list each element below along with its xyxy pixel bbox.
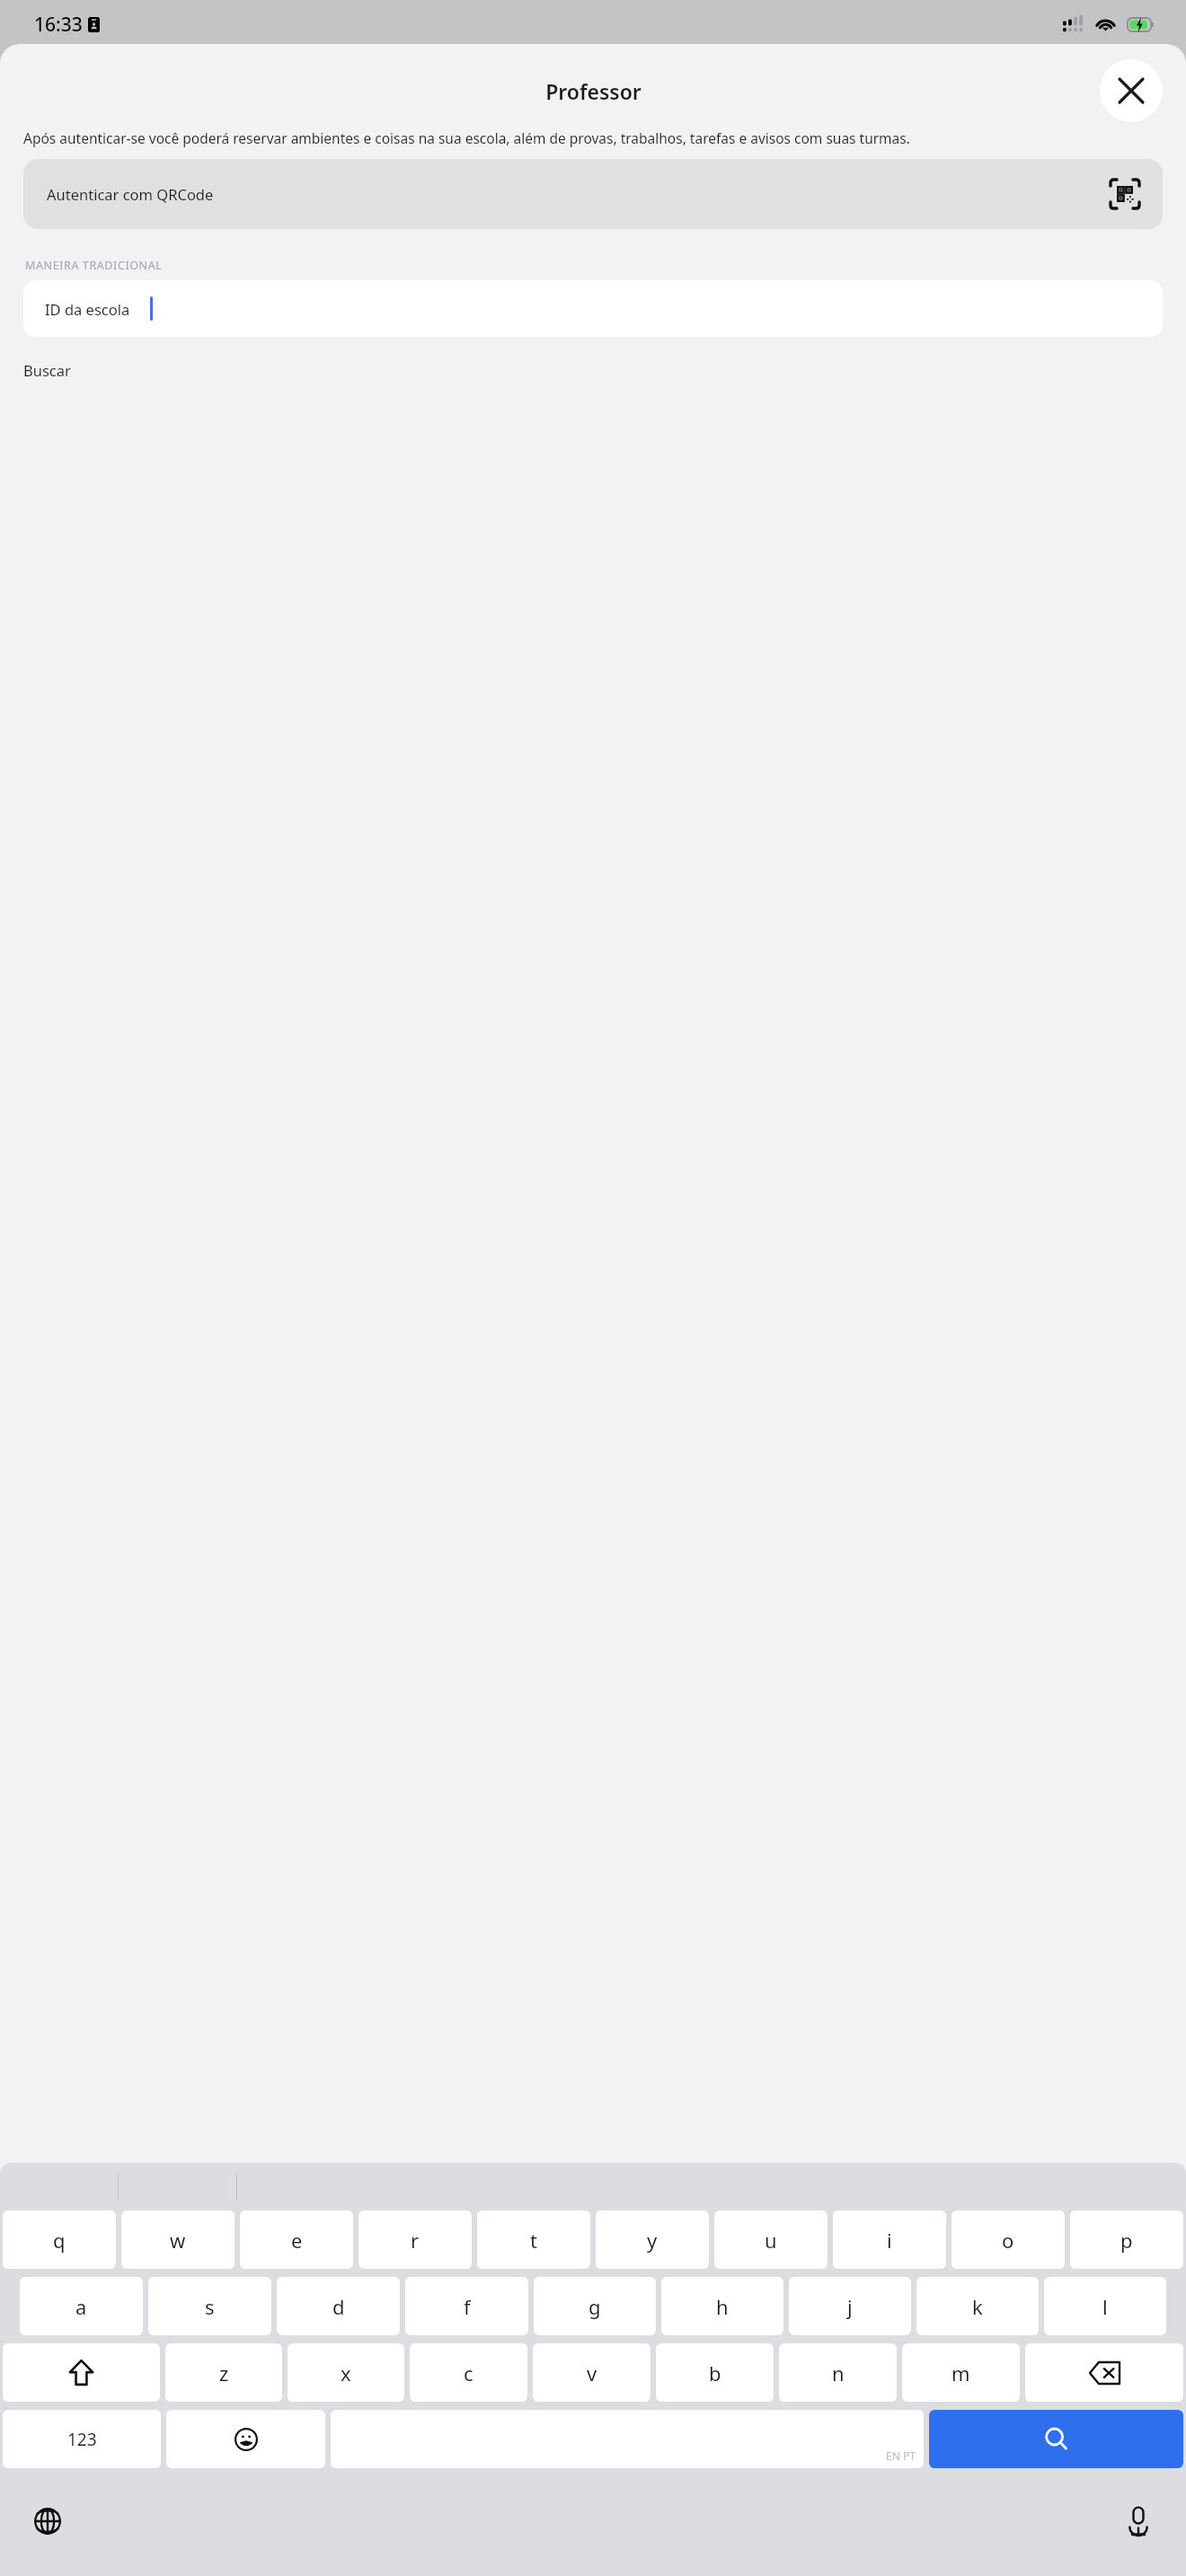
staticText: k (972, 2293, 983, 2320)
button[interactable]: q (3, 2210, 116, 2269)
button[interactable]: Emoji (166, 2410, 325, 2468)
staticText: q (53, 2227, 66, 2254)
button[interactable]: ID da escola (23, 280, 1163, 337)
button[interactable]: x (288, 2343, 404, 2402)
staticText: EN PT (886, 2448, 916, 2463)
staticText: v (587, 2360, 597, 2386)
button[interactable]: Idioma (20, 2493, 75, 2549)
staticText: Autenticar com QRCode (47, 184, 214, 204)
staticText: b (709, 2360, 721, 2386)
button[interactable]: e (240, 2210, 353, 2269)
button[interactable]: c (410, 2343, 527, 2402)
staticText: ID da escola (45, 299, 130, 319)
button[interactable]: Backspace (1025, 2343, 1183, 2402)
staticText: Após autenticar-se você poderá reservar … (23, 128, 1157, 147)
staticText: w (170, 2227, 186, 2254)
button[interactable]: Ditado por voz (1111, 2493, 1166, 2549)
button[interactable]: p (1070, 2210, 1183, 2269)
staticText: u (765, 2227, 777, 2254)
staticText: MANEIRA TRADICIONAL (25, 258, 163, 273)
staticText: e (291, 2227, 303, 2254)
staticText: g (589, 2293, 601, 2320)
button[interactable]: g (534, 2277, 656, 2335)
button[interactable]: Fechar (1100, 59, 1163, 122)
button[interactable]: i (833, 2210, 946, 2269)
button[interactable]: b (656, 2343, 774, 2402)
staticText: n (832, 2360, 845, 2386)
staticText: f (464, 2293, 471, 2320)
button[interactable]: Autenticar com QRCode (23, 159, 1163, 229)
staticText: j (847, 2293, 853, 2320)
button[interactable]: d (277, 2277, 400, 2335)
staticText: s (205, 2293, 215, 2320)
staticText: x (341, 2360, 351, 2386)
button[interactable]: f (405, 2277, 528, 2335)
button[interactable]: a (20, 2277, 143, 2335)
button[interactable]: Buscar (929, 2410, 1183, 2468)
button[interactable]: n (779, 2343, 897, 2402)
staticText: p (1120, 2227, 1133, 2254)
staticText: y (647, 2227, 658, 2254)
button[interactable]: t (477, 2210, 590, 2269)
button[interactable]: v (533, 2343, 651, 2402)
button[interactable]: z (165, 2343, 282, 2402)
staticText: t (530, 2227, 537, 2254)
staticText: o (1002, 2227, 1014, 2254)
staticText: m (951, 2360, 970, 2386)
button[interactable]: r (358, 2210, 472, 2269)
staticText: 123 (67, 2428, 97, 2451)
button[interactable]: h (661, 2277, 783, 2335)
staticText: h (716, 2293, 729, 2320)
staticText: i (887, 2227, 892, 2254)
button[interactable]: s (148, 2277, 271, 2335)
staticText: z (219, 2360, 229, 2386)
staticText: a (75, 2293, 87, 2320)
button[interactable]: j (789, 2277, 911, 2335)
button[interactable]: Buscar (23, 360, 71, 380)
staticText: Professor (545, 77, 642, 105)
staticText: d (332, 2293, 345, 2320)
staticText: l (1102, 2293, 1108, 2320)
button[interactable]: m (902, 2343, 1020, 2402)
button[interactable]: u (714, 2210, 828, 2269)
staticText: r (411, 2227, 420, 2254)
button[interactable]: k (916, 2277, 1039, 2335)
button[interactable]: o (951, 2210, 1065, 2269)
button[interactable]: Shift (3, 2343, 160, 2402)
staticText: 16:33 (34, 12, 83, 38)
button[interactable]: 123 (3, 2410, 161, 2468)
button[interactable]: l (1044, 2277, 1166, 2335)
button[interactable]: w (121, 2210, 235, 2269)
staticText: c (464, 2360, 474, 2386)
button[interactable]: y (596, 2210, 709, 2269)
